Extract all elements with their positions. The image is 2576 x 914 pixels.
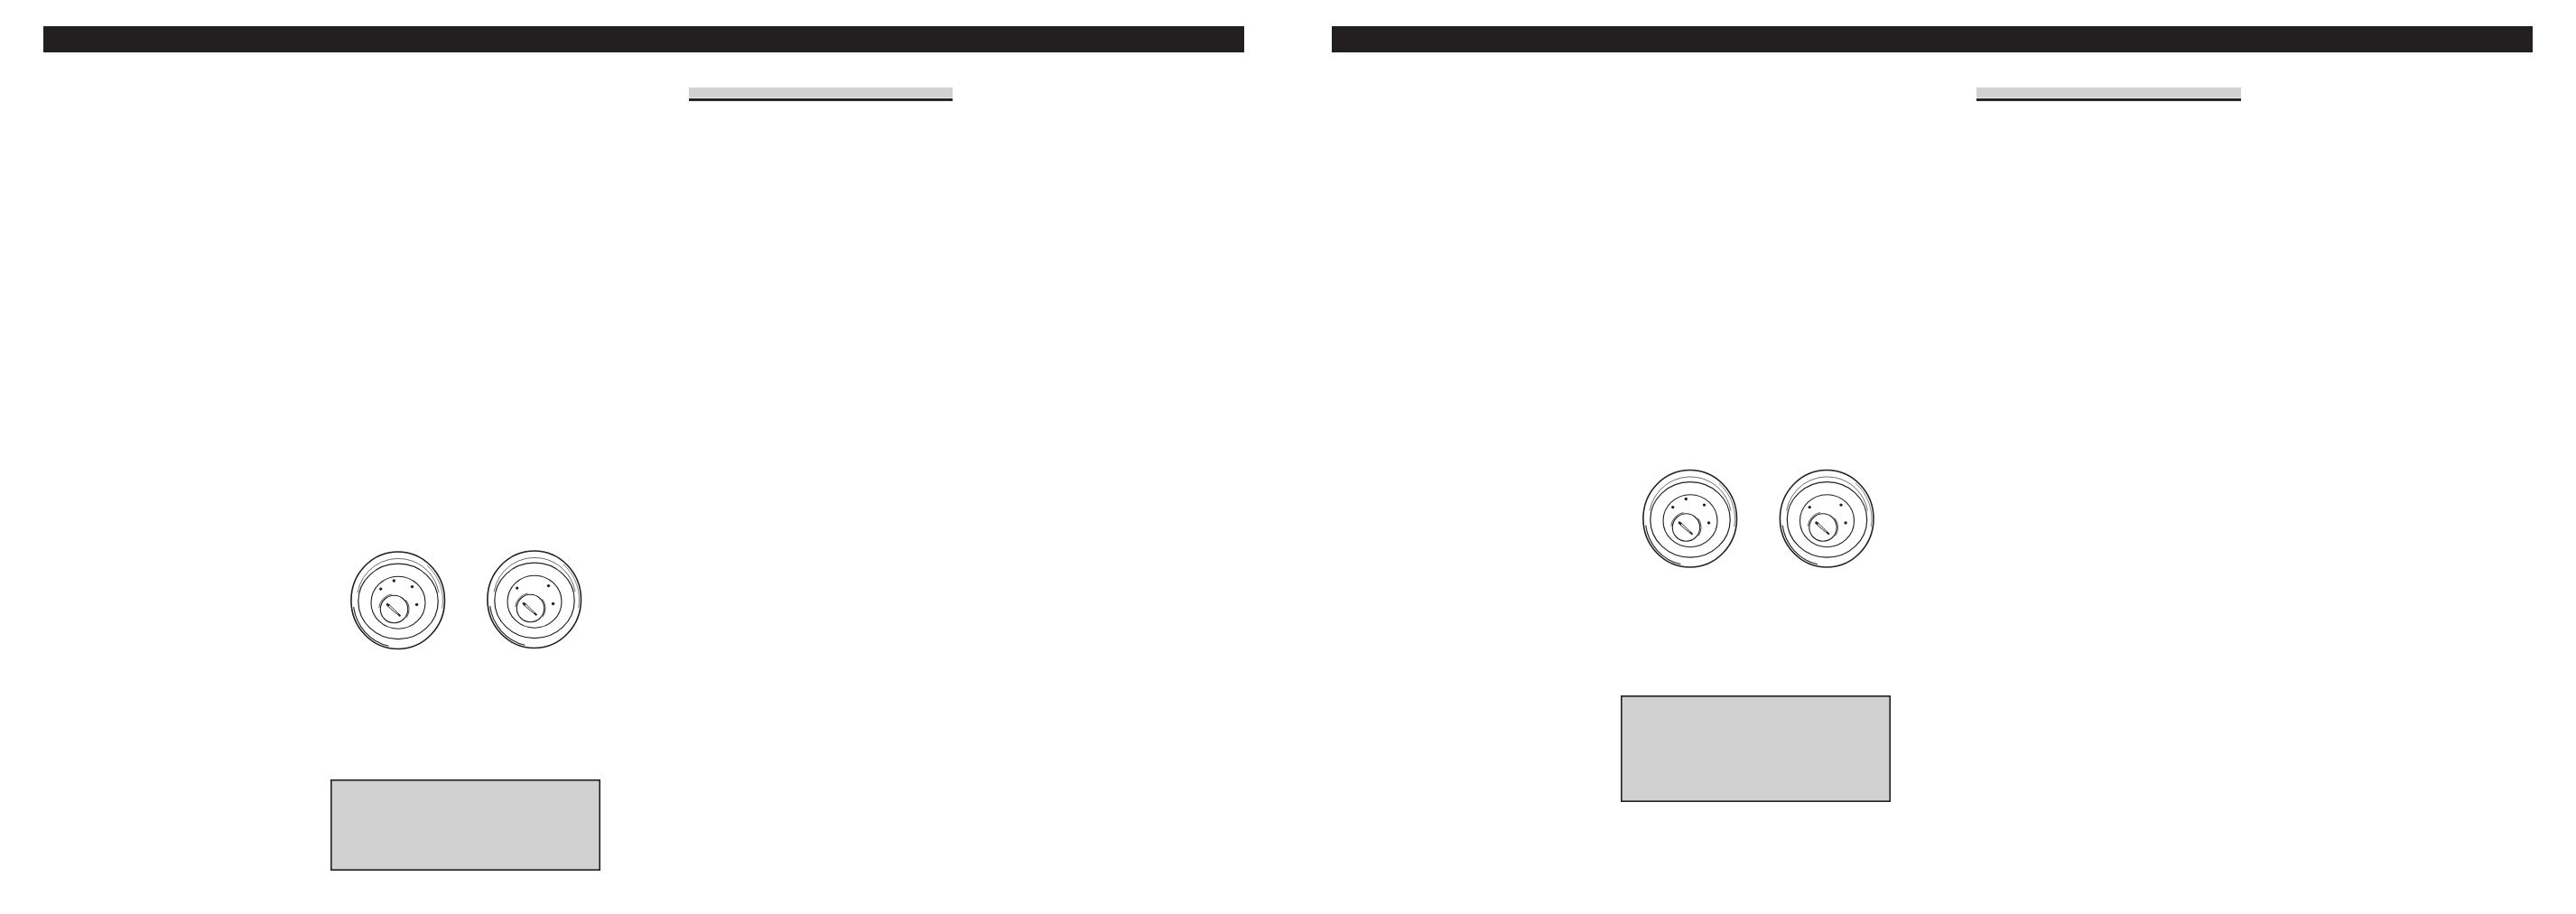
- button[interactable]: Right page note panel: [1621, 695, 1891, 802]
- button[interactable]: Left page note panel: [330, 779, 600, 871]
- button[interactable]: Brake drum, front view: [350, 552, 446, 649]
- button[interactable]: Left page figure caption: [689, 87, 953, 101]
- button[interactable]: Brake drum, front view: [1642, 470, 1738, 567]
- button[interactable]: Brake drum, rear view: [1779, 470, 1874, 567]
- button[interactable]: Right page header rule: [1332, 26, 2533, 52]
- button[interactable]: Brake drum, rear view: [487, 551, 582, 648]
- button[interactable]: Left page header rule: [43, 26, 1244, 52]
- button[interactable]: Right page figure caption: [1976, 87, 2241, 101]
